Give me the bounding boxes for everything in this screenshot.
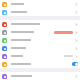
button[interactable]: Data and Storage xyxy=(0,36,80,44)
button[interactable]: Appearance xyxy=(0,44,80,52)
button[interactable]: Privacy and Security xyxy=(0,28,80,36)
button[interactable]: Stickers and Emoji, on xyxy=(72,62,78,66)
button[interactable]: Telegram Premium xyxy=(0,72,80,80)
button[interactable]: Notifications and Sounds xyxy=(0,20,80,28)
button[interactable]: Chat Folders xyxy=(0,8,80,16)
button[interactable]: Language xyxy=(0,52,80,60)
button[interactable]: Devices xyxy=(0,0,80,8)
button[interactable]: Stickers and Emoji xyxy=(0,60,80,68)
